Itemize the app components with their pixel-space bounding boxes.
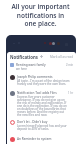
staticText: All your important notifications in one … xyxy=(11,2,70,27)
staticText: Joseph Philip comments xyxy=(17,75,53,79)
staticText: Renting want family xyxy=(16,63,46,67)
staticText: Express five years customer assistance. … xyxy=(17,95,67,117)
staticText: 2 min xyxy=(66,63,74,67)
button[interactable]: Notification Tool adds Files xyxy=(10,91,74,117)
staticText: we here xyxy=(16,67,27,71)
button[interactable]: Renting want family xyxy=(10,63,74,71)
button[interactable]: Don't let - Didn't buy xyxy=(10,120,74,131)
staticText: Notifications xyxy=(10,54,38,60)
button[interactable]: Joseph Philip comments xyxy=(10,75,74,86)
staticText: Don't let - Didn't buy xyxy=(17,120,48,124)
staticText: Notification Tool adds Files xyxy=(17,91,57,95)
button[interactable]: An Reminder to system xyxy=(10,137,74,142)
staticText: All taste - I'm a part of the design tea… xyxy=(17,79,74,86)
staticText: Mark all as read xyxy=(50,55,74,59)
staticText: 1 hr xyxy=(68,91,74,95)
staticText: An Reminder to system xyxy=(17,137,52,141)
staticText: Lorem himself planned has and your depos… xyxy=(17,124,74,131)
